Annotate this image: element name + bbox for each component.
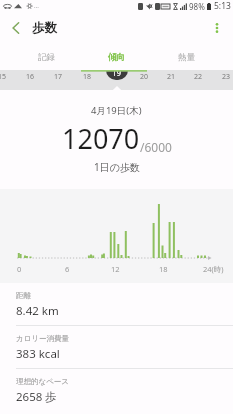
staticText: 19 bbox=[112, 70, 122, 78]
staticText: 12 bbox=[111, 264, 120, 274]
staticText: /6000 bbox=[140, 139, 172, 155]
staticText: ... bbox=[34, 2, 39, 10]
button[interactable]: More options bbox=[205, 16, 229, 40]
button[interactable]: 理想的なペース bbox=[0, 369, 233, 411]
staticText: 17 bbox=[54, 72, 63, 82]
staticText: 8.42 km bbox=[16, 303, 59, 319]
button[interactable]: カロリー消費量 bbox=[0, 326, 233, 368]
button[interactable]: 記録 bbox=[12, 44, 81, 70]
button[interactable]: Back bbox=[4, 16, 28, 40]
staticText: 歩数 bbox=[32, 20, 57, 36]
staticText: 24(時) bbox=[203, 264, 224, 274]
staticText: 熱量 bbox=[178, 52, 195, 63]
button[interactable]: 傾向 bbox=[81, 44, 151, 70]
staticText: 2658 歩 bbox=[16, 389, 57, 405]
staticText: 傾向 bbox=[108, 52, 125, 63]
staticText: 15 bbox=[0, 72, 7, 82]
staticText: 98% bbox=[189, 1, 205, 12]
staticText: 23 bbox=[222, 72, 231, 82]
staticText: 18 bbox=[159, 264, 168, 274]
staticText: 距離 bbox=[16, 291, 31, 300]
staticText: 21 bbox=[167, 72, 176, 82]
staticText: 20 bbox=[140, 72, 149, 82]
staticText: 383 kcal bbox=[16, 346, 60, 362]
staticText: 22 bbox=[194, 72, 203, 82]
staticText: 16 bbox=[26, 72, 35, 82]
staticText: 記録 bbox=[38, 52, 55, 63]
staticText: 0 bbox=[17, 264, 22, 274]
button[interactable]: 19 bbox=[106, 70, 128, 80]
staticText: 6 bbox=[65, 264, 70, 274]
button[interactable]: 距離 bbox=[0, 283, 233, 325]
staticText: 理想的なペース bbox=[16, 377, 70, 386]
staticText: 5:13 bbox=[214, 0, 231, 12]
button[interactable]: 熱量 bbox=[151, 44, 221, 70]
staticText: 18 bbox=[83, 72, 92, 82]
staticText: 12070 bbox=[62, 120, 140, 157]
staticText: 4月19日(木) bbox=[91, 104, 142, 117]
staticText: 1日の歩数 bbox=[94, 160, 140, 174]
staticText: カロリー消費量 bbox=[16, 334, 70, 343]
